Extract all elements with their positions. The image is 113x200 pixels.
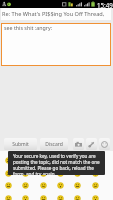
button[interactable]: Emoticon bbox=[89, 179, 101, 191]
button[interactable]: Take photo bbox=[73, 138, 84, 150]
button[interactable]: Emoticon bbox=[2, 167, 14, 179]
button[interactable]: Insert emoticon bbox=[99, 138, 110, 150]
button[interactable]: Emoticon bbox=[37, 154, 49, 166]
staticText: Submit bbox=[12, 141, 29, 148]
button[interactable]: Emoticon bbox=[19, 192, 31, 200]
staticText: form, and try again. bbox=[13, 171, 56, 175]
staticText: submitted. Please go back, reload the bbox=[13, 165, 94, 171]
staticText: Your secure key, used to verify you are bbox=[13, 153, 96, 159]
button[interactable]: Emoticon bbox=[89, 192, 101, 200]
button[interactable]: Emoticon bbox=[2, 179, 14, 191]
button[interactable]: Emoticon bbox=[89, 167, 101, 179]
button[interactable]: Emoticon bbox=[54, 154, 66, 166]
button[interactable]: Emoticon bbox=[71, 179, 83, 191]
button[interactable]: Emoticon bbox=[71, 167, 83, 179]
button[interactable]: Emoticon bbox=[54, 192, 66, 200]
staticText: posting the topic, did not match the one bbox=[13, 159, 100, 165]
button[interactable]: Emoticon bbox=[19, 167, 31, 179]
button[interactable]: Emoticon bbox=[89, 154, 101, 166]
button[interactable]: Emoticon bbox=[54, 167, 66, 179]
staticText: 15:49 bbox=[97, 1, 113, 9]
staticText: Discard bbox=[45, 141, 63, 148]
button[interactable]: Emoticon bbox=[71, 154, 83, 166]
button[interactable]: Submit bbox=[4, 138, 37, 150]
button[interactable]: Re: The What's PI$$ing You Off Thread, bbox=[1, 8, 111, 20]
button[interactable]: Emoticon bbox=[19, 179, 31, 191]
button[interactable]: Emoticon bbox=[54, 179, 66, 191]
button[interactable]: Emoticon bbox=[37, 179, 49, 191]
staticText: Re: The What's PI$$ing You Off Thread, bbox=[2, 10, 105, 18]
button[interactable]: Emoticon bbox=[2, 192, 14, 200]
button[interactable]: Attach file bbox=[86, 138, 97, 150]
button[interactable]: Emoticon bbox=[37, 167, 49, 179]
button[interactable]: Emoticon bbox=[19, 154, 31, 166]
button[interactable]: see this shit :angry: bbox=[2, 24, 110, 65]
button[interactable]: Discard bbox=[40, 138, 68, 150]
button[interactable]: Emoticon bbox=[2, 154, 14, 166]
staticText: see this shit :angry: bbox=[4, 24, 53, 31]
button[interactable]: Emoticon bbox=[37, 192, 49, 200]
button[interactable]: Emoticon bbox=[71, 192, 83, 200]
